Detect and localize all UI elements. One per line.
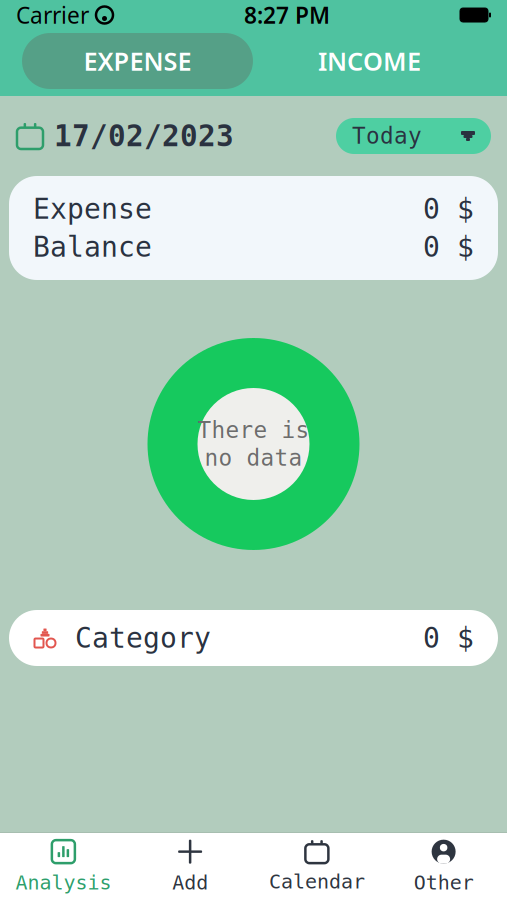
button[interactable]: 17/02/2023: [16, 119, 234, 153]
staticText: There is: [197, 417, 309, 443]
staticText: Today: [352, 123, 422, 149]
staticText: EXPENSE: [83, 44, 191, 78]
staticText: Carrier: [16, 0, 89, 30]
staticText: Analysis: [15, 871, 111, 894]
staticText: 0 $: [423, 193, 474, 225]
staticText: 0 $: [423, 622, 474, 654]
button[interactable]: Calendar: [253, 833, 380, 900]
staticText: Balance: [33, 231, 152, 263]
staticText: 17/02/2023: [54, 119, 234, 153]
staticText: 0 $: [423, 231, 474, 263]
staticText: Category: [75, 622, 211, 654]
button[interactable]: Other: [380, 833, 507, 900]
staticText: Add: [172, 871, 208, 894]
button[interactable]: INCOME: [254, 33, 485, 89]
button[interactable]: Add: [127, 833, 254, 900]
staticText: no data: [204, 445, 302, 471]
button[interactable]: Today: [336, 118, 491, 154]
staticText: Calendar: [269, 870, 365, 893]
staticText: 8:27 PM: [244, 0, 330, 30]
staticText: Other: [414, 871, 474, 894]
button[interactable]: Analysis: [0, 833, 127, 900]
button[interactable]: EXPENSE: [22, 33, 253, 89]
staticText: INCOME: [318, 44, 421, 78]
button[interactable]: Category: [9, 610, 498, 666]
staticText: Expense: [33, 193, 152, 225]
